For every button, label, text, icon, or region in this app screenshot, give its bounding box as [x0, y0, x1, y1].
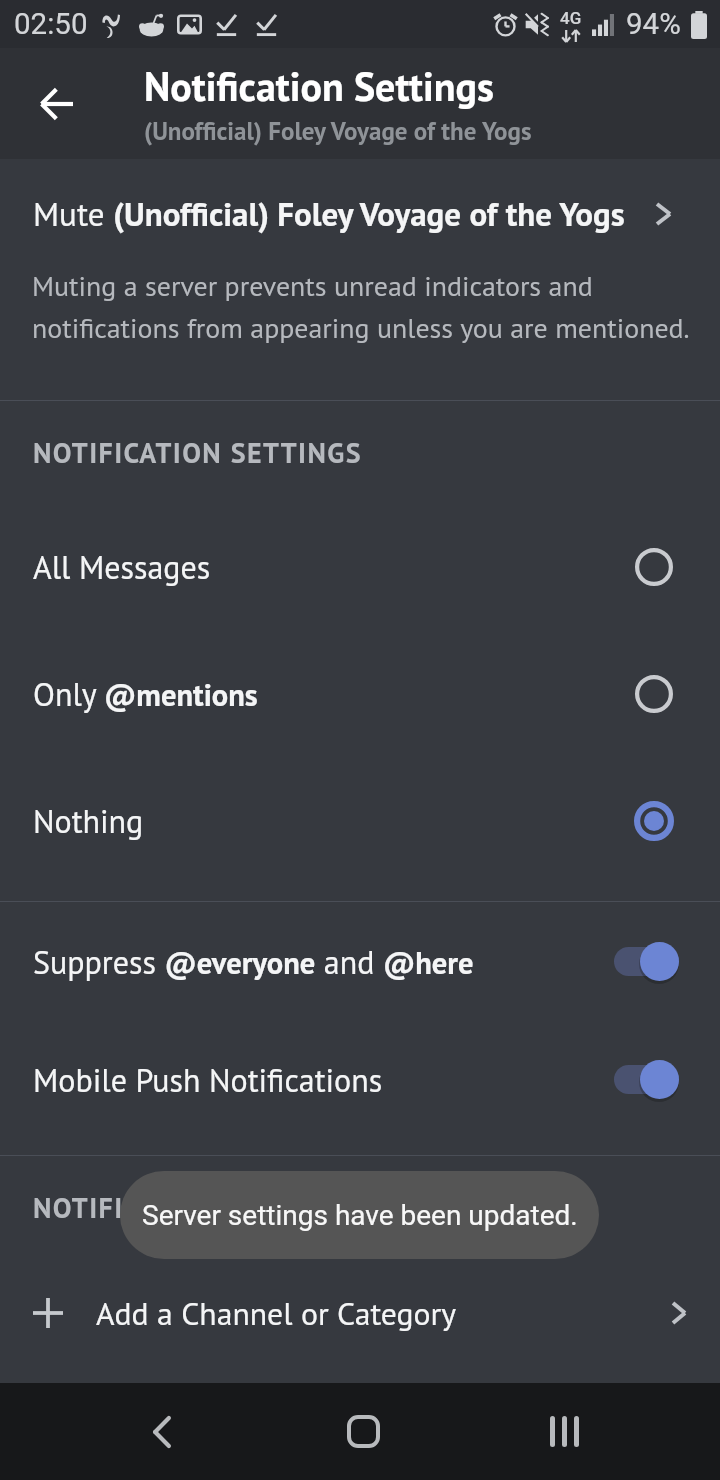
- staticText: Nothing: [33, 800, 634, 841]
- button[interactable]: Recent apps: [517, 1384, 612, 1479]
- button[interactable]: Navigate up: [0, 48, 112, 159]
- button[interactable]: Home: [316, 1384, 411, 1479]
- staticText: NOTIFICATION OVERRIDES: [33, 1189, 382, 1225]
- button[interactable]: Add a Channel or Category: [0, 1257, 720, 1369]
- button[interactable]: Nothing: [0, 757, 720, 884]
- staticText: 94%: [626, 7, 681, 42]
- staticText: Muting a server prevents unread indicato…: [32, 268, 706, 346]
- staticText: Notification Settings: [144, 60, 494, 112]
- staticText: Server settings have been updated.: [142, 1199, 578, 1232]
- staticText: Mobile Push Notifications: [33, 1059, 614, 1100]
- button[interactable]: Back: [114, 1384, 209, 1479]
- button[interactable]: Mobile Push Notifications: [0, 1020, 720, 1138]
- staticText: Mute (Unofficial) Foley Voyage of the Yo…: [33, 192, 645, 235]
- button[interactable]: Mute (Unofficial) Foley Voyage of the Yo…: [0, 159, 720, 346]
- staticText: Only @mentions: [33, 673, 634, 714]
- staticText: Add a Channel or Category: [96, 1293, 671, 1334]
- button[interactable]: Only @mentions: [0, 630, 720, 757]
- staticText: (Unofficial) Foley Voyage of the Yogs: [144, 115, 532, 147]
- staticText: 02:50: [14, 7, 88, 42]
- staticText: Suppress @everyone and @here: [33, 941, 614, 982]
- button[interactable]: All Messages: [0, 503, 720, 630]
- staticText: NOTIFICATION SETTINGS: [33, 434, 362, 470]
- staticText: 4G: [560, 8, 582, 28]
- staticText: All Messages: [33, 546, 634, 587]
- button[interactable]: Suppress @everyone and @here: [0, 902, 720, 1020]
